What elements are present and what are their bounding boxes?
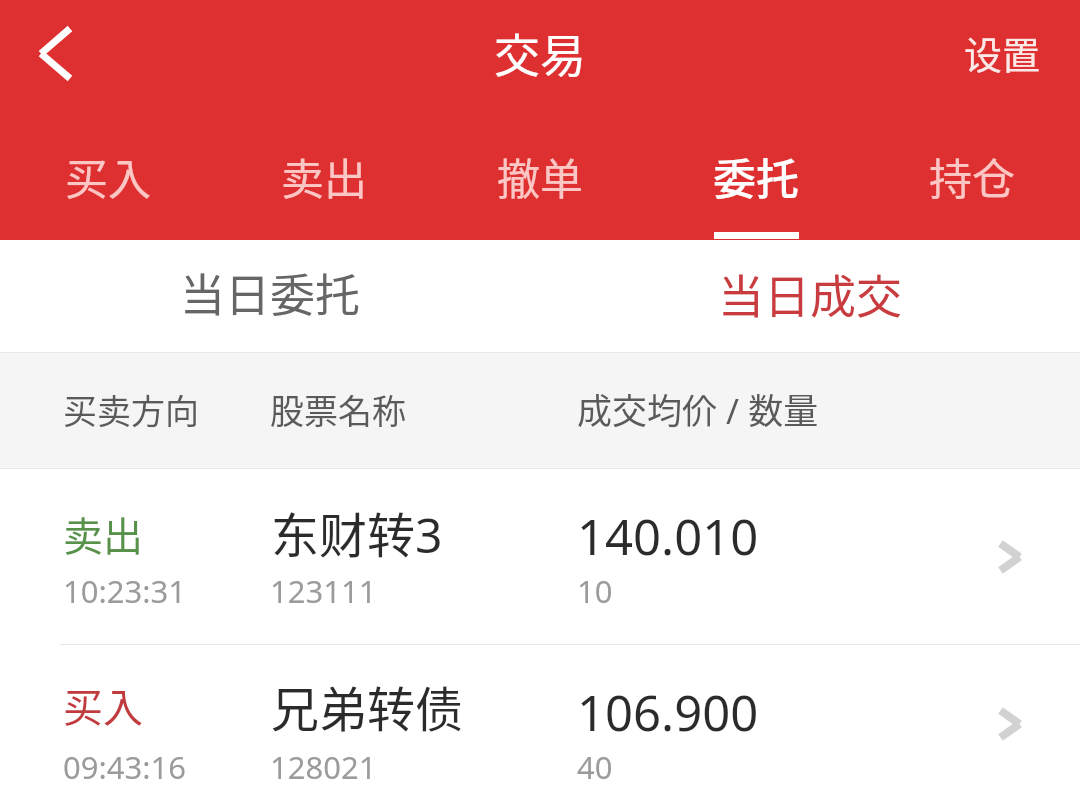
button[interactable]: 设置 <box>944 5 1080 111</box>
staticText: 买入 <box>63 676 143 734</box>
button[interactable]: 持仓 <box>864 120 1080 240</box>
staticText: 买卖方向 <box>63 385 199 434</box>
button[interactable]: Back <box>8 8 102 102</box>
button[interactable]: 买入 <box>0 645 1080 803</box>
button[interactable]: 当日成交 <box>540 240 1080 352</box>
button[interactable]: 当日委托 <box>0 240 540 352</box>
staticText: 106.900 <box>577 679 759 746</box>
staticText: 10 <box>577 570 613 612</box>
staticText: 140.010 <box>577 503 759 570</box>
staticText: 09:43:16 <box>63 746 187 788</box>
button[interactable]: 买入 <box>0 120 216 240</box>
button[interactable]: Open order details <box>982 699 1032 749</box>
staticText: 128021 <box>270 746 377 788</box>
staticText: 40 <box>577 746 613 788</box>
button[interactable]: Open order details <box>982 532 1032 582</box>
staticText: 兄弟转债 <box>271 671 464 741</box>
staticText: 123111 <box>270 570 377 612</box>
staticText: 持仓 <box>864 145 1080 207</box>
staticText: 10:23:31 <box>63 570 187 612</box>
staticText: 股票名称 <box>270 385 406 434</box>
staticText: 撤单 <box>432 145 648 207</box>
staticText: 成交均价 / 数量 <box>577 383 819 434</box>
button[interactable]: 委托 <box>648 120 864 240</box>
staticText: 卖出 <box>63 505 143 563</box>
staticText: 卖出 <box>216 145 432 207</box>
staticText: 买入 <box>0 145 216 207</box>
button[interactable]: 撤单 <box>432 120 648 240</box>
staticText: 东财转3 <box>271 497 443 567</box>
staticText: 当日委托 <box>0 260 540 325</box>
button[interactable]: 卖出 <box>216 120 432 240</box>
staticText: 交易 <box>494 19 586 86</box>
staticText: 设置 <box>964 25 1041 80</box>
button[interactable]: 卖出 <box>0 469 1080 644</box>
staticText: 当日成交 <box>540 260 1080 327</box>
staticText: 委托 <box>648 145 864 207</box>
